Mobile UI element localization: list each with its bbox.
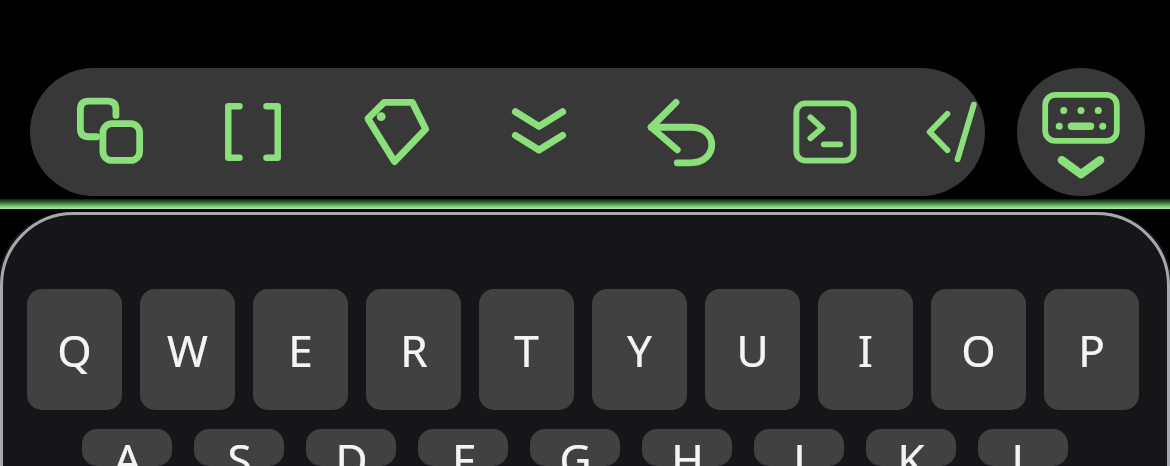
button[interactable]: A (82, 429, 172, 466)
staticText: F (452, 429, 475, 466)
button[interactable]: Brackets (205, 84, 301, 180)
staticText: P (1078, 320, 1105, 380)
button[interactable]: G (530, 429, 620, 466)
staticText: I (858, 320, 873, 380)
staticText: W (167, 320, 208, 380)
button[interactable]: S (194, 429, 284, 466)
button[interactable]: F (418, 429, 508, 466)
button[interactable]: E (253, 289, 348, 410)
staticText: H (671, 429, 704, 466)
button[interactable]: O (931, 289, 1026, 410)
button[interactable]: R (366, 289, 461, 410)
staticText: S (227, 429, 252, 466)
button[interactable]: Q (27, 289, 122, 410)
button[interactable]: I (818, 289, 913, 410)
button[interactable]: W (140, 289, 235, 410)
button[interactable]: Tag (348, 84, 444, 180)
staticText: G (559, 429, 592, 466)
button[interactable]: Terminal (777, 84, 873, 180)
staticText: Y (627, 320, 652, 380)
button[interactable]: J (754, 429, 844, 466)
button[interactable]: Code tag (920, 84, 985, 180)
button[interactable]: Undo (634, 84, 730, 180)
button[interactable]: Y (592, 289, 687, 410)
staticText: A (113, 429, 142, 466)
button[interactable]: K (866, 429, 956, 466)
staticText: J (793, 429, 806, 466)
button[interactable]: Copy (62, 84, 158, 180)
button[interactable]: L (978, 429, 1068, 466)
staticText: O (961, 320, 996, 380)
staticText: D (335, 429, 368, 466)
button[interactable]: T (479, 289, 574, 410)
staticText: U (736, 320, 769, 380)
button[interactable]: Scroll down (491, 84, 587, 180)
button[interactable]: D (306, 429, 396, 466)
staticText: L (1011, 429, 1035, 466)
staticText: Q (57, 320, 92, 380)
button[interactable]: P (1044, 289, 1139, 410)
staticText: T (514, 320, 539, 380)
button[interactable]: H (642, 429, 732, 466)
staticText: K (897, 429, 925, 466)
staticText: R (400, 320, 428, 380)
button[interactable]: Hide keyboard (1017, 68, 1145, 196)
button[interactable]: U (705, 289, 800, 410)
staticText: E (288, 320, 313, 380)
